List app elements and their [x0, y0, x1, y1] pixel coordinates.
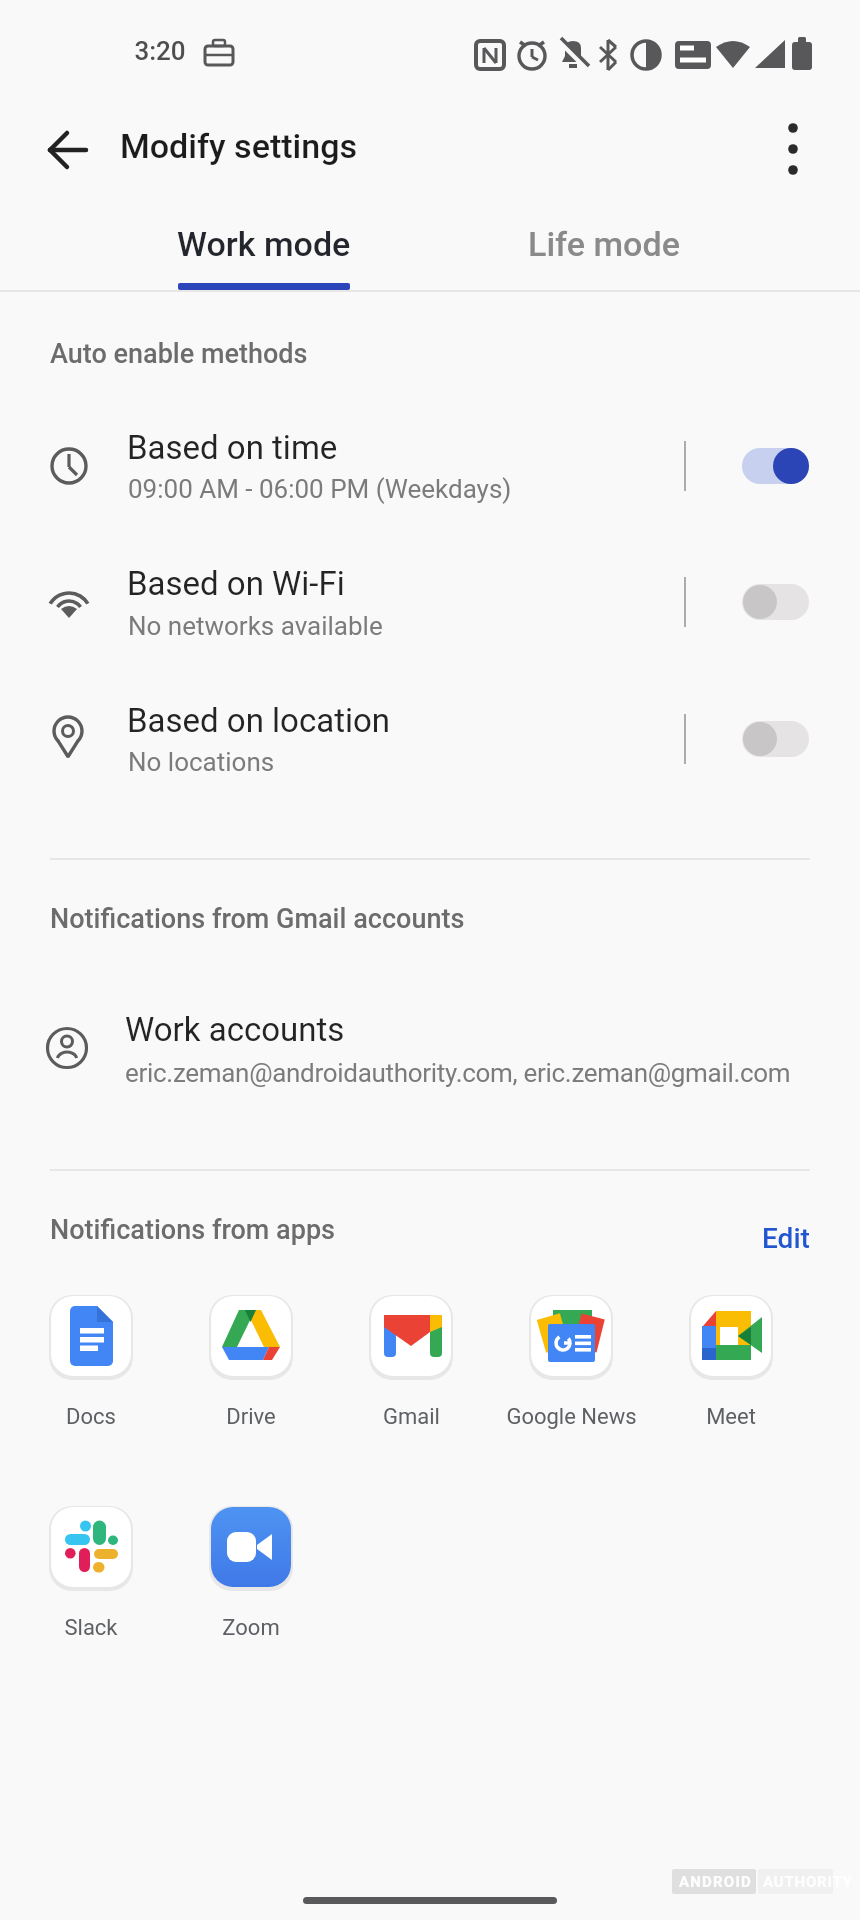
staticText: Notifications from apps	[50, 1214, 336, 1246]
button[interactable]	[371, 1296, 451, 1376]
staticText: Based on location	[127, 701, 391, 740]
button[interactable]	[735, 576, 817, 628]
staticText: Work mode	[177, 224, 351, 264]
staticText: 3:20	[134, 36, 186, 66]
staticText: eric.zeman@androidauthority.com, eric.ze…	[125, 1058, 791, 1088]
staticText: Modify settings	[120, 126, 358, 166]
staticText: AUTHORITY	[763, 1873, 853, 1891]
button[interactable]: Work mode	[98, 200, 430, 288]
button[interactable]	[51, 1296, 131, 1376]
staticText: Meet	[706, 1404, 756, 1430]
button[interactable]	[763, 119, 823, 179]
button[interactable]	[51, 1507, 131, 1587]
staticText: Gmail	[383, 1404, 440, 1430]
staticText: Drive	[226, 1404, 276, 1430]
staticText: No networks available	[128, 611, 383, 641]
button[interactable]: Edit	[730, 1212, 810, 1264]
staticText: Based on time	[127, 428, 338, 467]
button[interactable]	[211, 1296, 291, 1376]
button[interactable]	[30, 120, 100, 180]
staticText: ANDROID	[679, 1873, 752, 1891]
button[interactable]	[531, 1296, 611, 1376]
button[interactable]: Life mode	[438, 200, 770, 288]
button[interactable]	[30, 693, 710, 788]
staticText: Life mode	[528, 224, 680, 264]
staticText: Notifications from Gmail accounts	[50, 903, 465, 935]
button[interactable]	[735, 440, 817, 492]
button[interactable]	[30, 556, 710, 651]
staticText: Based on Wi-Fi	[127, 564, 345, 603]
staticText: Zoom	[222, 1615, 280, 1641]
staticText: Slack	[64, 1615, 118, 1641]
staticText: Edit	[762, 1222, 810, 1255]
staticText: 09:00 AM - 06:00 PM (Weekdays)	[128, 474, 512, 504]
staticText: Docs	[66, 1404, 116, 1430]
button[interactable]	[211, 1507, 291, 1587]
staticText: Auto enable methods	[50, 338, 308, 370]
staticText: Google News	[506, 1404, 637, 1430]
staticText: Work accounts	[125, 1010, 345, 1049]
button[interactable]	[735, 713, 817, 765]
button[interactable]	[691, 1296, 771, 1376]
button[interactable]	[30, 420, 710, 515]
button[interactable]	[30, 1000, 820, 1100]
staticText: No locations	[128, 747, 275, 777]
